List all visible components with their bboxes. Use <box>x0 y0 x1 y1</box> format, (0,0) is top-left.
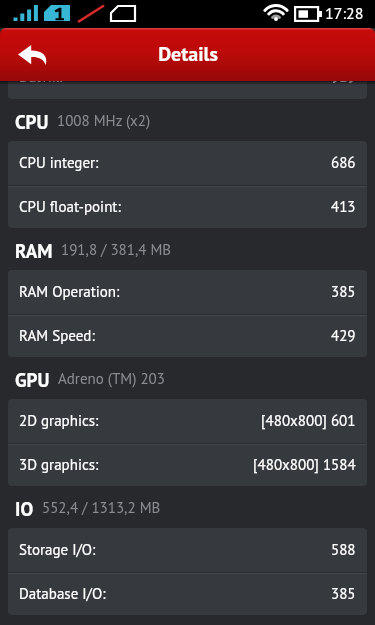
staticText: 3D graphics: <box>19 455 99 474</box>
staticText: 929 <box>331 67 356 86</box>
button[interactable]: RAM Speed: <box>8 316 367 357</box>
staticText: RAM <box>15 239 53 264</box>
staticText: 385 <box>331 584 356 603</box>
button[interactable]: Database I/O: <box>8 574 367 615</box>
staticText: IO <box>15 497 34 522</box>
staticText: 429 <box>331 326 356 345</box>
staticText: [480x800] 1584 <box>253 455 356 474</box>
staticText: 552,4 / 1313,2 MB <box>42 498 161 517</box>
button[interactable]: CPU integer: <box>8 141 367 185</box>
staticText: 191,8 / 381,4 MB <box>61 240 172 259</box>
button[interactable]: Dalvik: <box>8 56 367 99</box>
staticText: 686 <box>331 153 356 172</box>
staticText: RAM Operation: <box>19 282 120 301</box>
staticText: 385 <box>331 282 356 301</box>
button[interactable]: CPU float-point: <box>8 187 367 228</box>
button[interactable]: RAM Operation: <box>8 270 367 314</box>
staticText: 2D graphics: <box>19 411 99 430</box>
staticText: 17:28 <box>325 3 364 24</box>
staticText: Adreno (TM) 203 <box>58 369 165 388</box>
staticText: CPU integer: <box>19 153 99 172</box>
staticText: Storage I/O: <box>19 540 96 559</box>
button[interactable]: Back <box>4 28 58 81</box>
staticText: 413 <box>331 197 356 216</box>
staticText: 588 <box>331 540 356 559</box>
staticText: CPU float-point: <box>19 197 121 216</box>
button[interactable]: 3D graphics: <box>8 445 367 486</box>
staticText: 1008 MHz (x2) <box>57 111 151 130</box>
staticText: CPU <box>15 110 49 135</box>
button[interactable]: Storage I/O: <box>8 528 367 572</box>
button[interactable]: 2D graphics: <box>8 399 367 443</box>
staticText: [480x800] 601 <box>261 411 356 430</box>
staticText: RAM Speed: <box>19 326 95 345</box>
staticText: GPU <box>15 368 50 393</box>
staticText: Details <box>158 41 218 67</box>
staticText: Database I/O: <box>19 584 106 603</box>
staticText: Dalvik: <box>19 67 63 86</box>
